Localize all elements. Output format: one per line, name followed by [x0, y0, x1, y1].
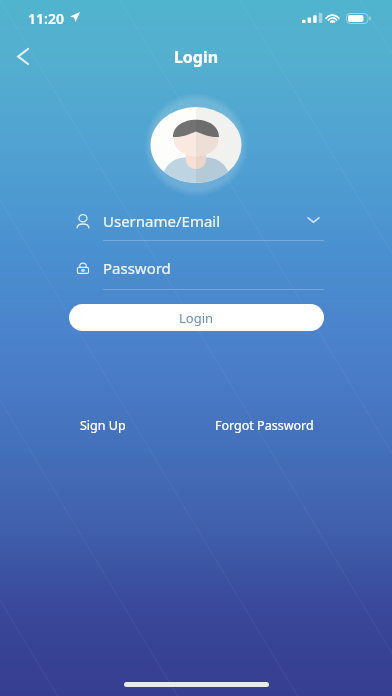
button[interactable]: Sign Up [76, 414, 130, 437]
button[interactable]: Back [5, 39, 39, 73]
staticText: Login [179, 309, 214, 327]
staticText: 11:20 [28, 9, 64, 28]
staticText: Password [103, 258, 171, 278]
staticText: Forgot Password [215, 417, 314, 434]
button[interactable]: Login [69, 304, 324, 331]
button[interactable]: Forgot Password [211, 414, 318, 437]
button[interactable]: Password [69, 255, 324, 291]
staticText: Login [0, 46, 392, 68]
button[interactable]: Username/Email [69, 208, 324, 242]
staticText: Sign Up [80, 417, 126, 434]
staticText: Username/Email [103, 211, 221, 231]
